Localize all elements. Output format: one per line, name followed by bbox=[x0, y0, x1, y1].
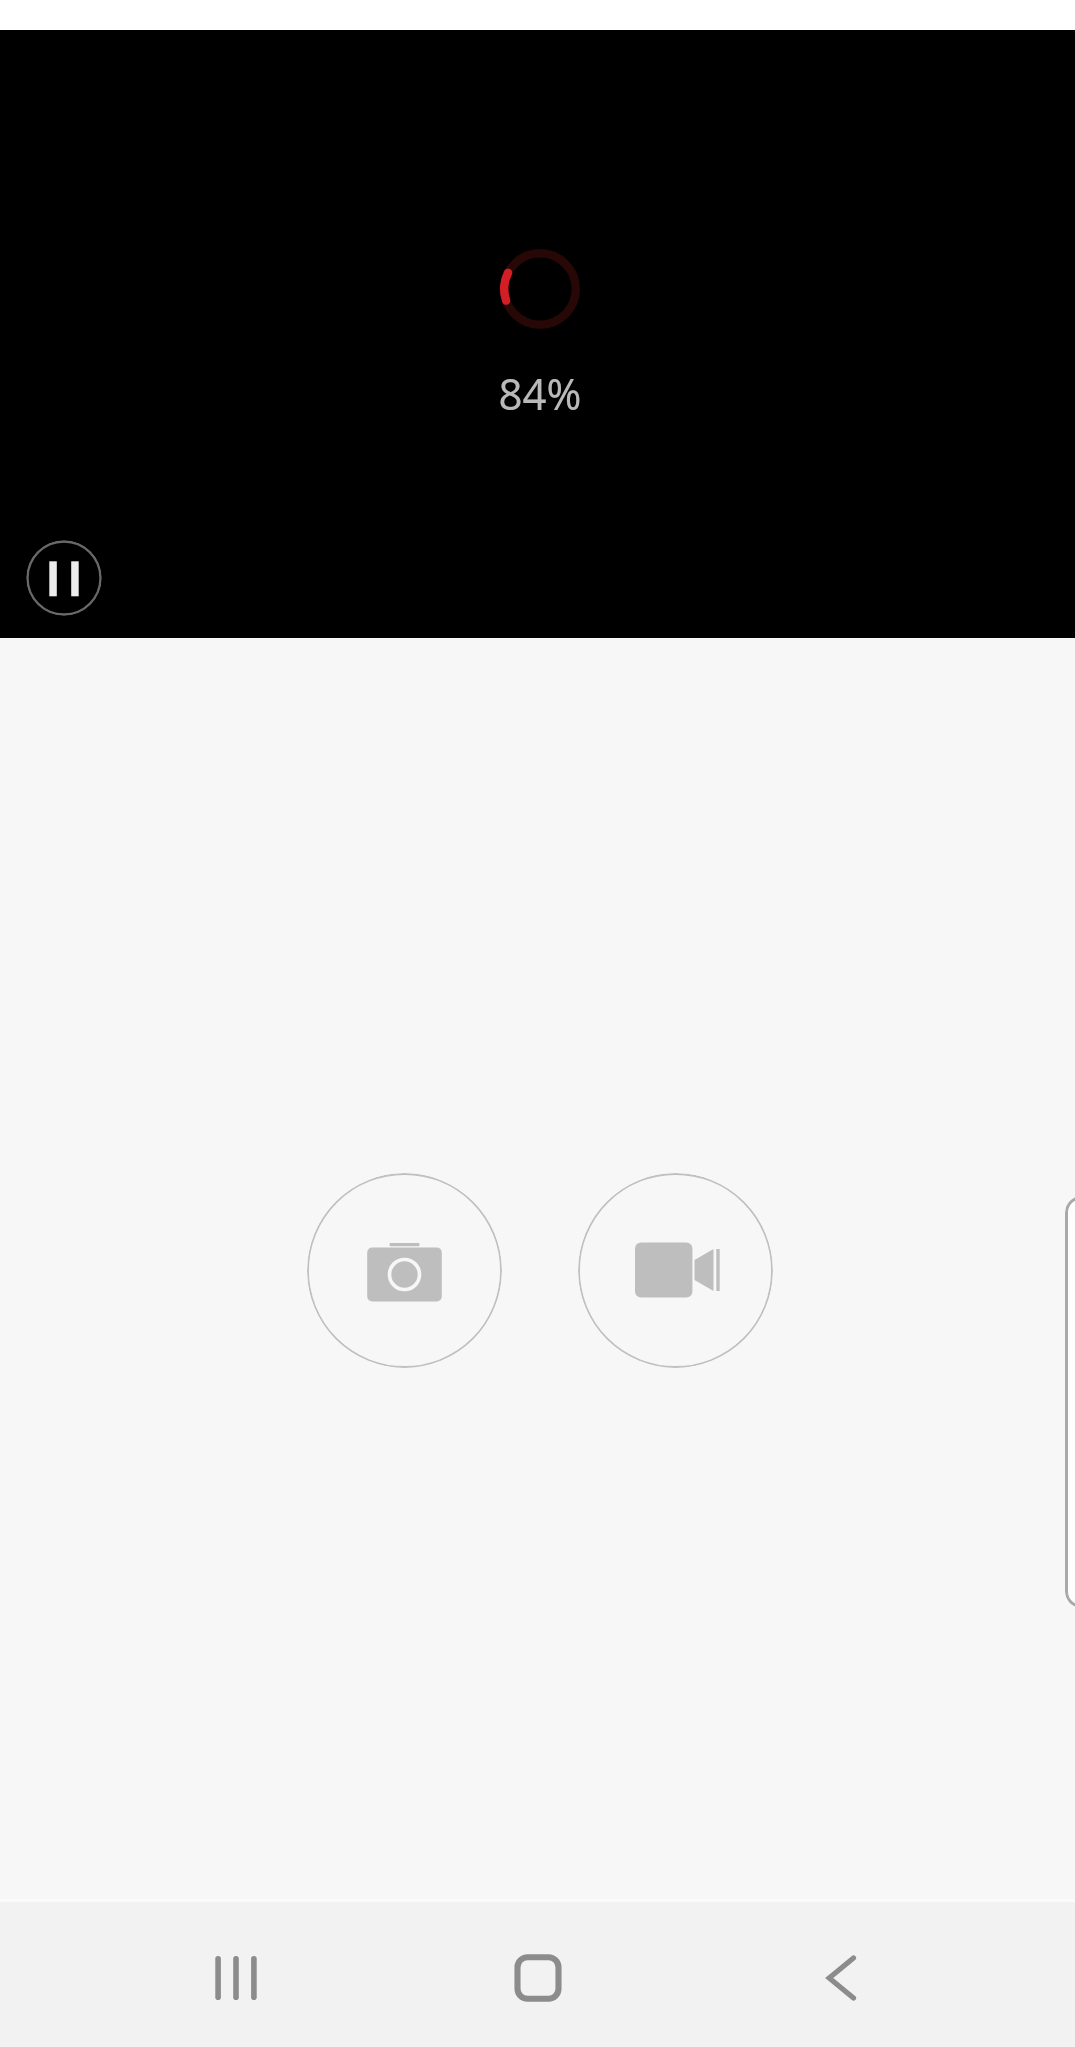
button[interactable]: Back bbox=[783, 1922, 895, 2034]
button[interactable]: Home bbox=[482, 1922, 594, 2034]
button[interactable]: Take photo bbox=[307, 1173, 502, 1368]
button[interactable]: Recent apps bbox=[180, 1922, 292, 2034]
button[interactable]: Pause bbox=[26, 540, 102, 616]
button[interactable] bbox=[1065, 1196, 1075, 1608]
button[interactable]: Record video bbox=[578, 1173, 773, 1368]
staticText: 84% bbox=[498, 363, 582, 423]
